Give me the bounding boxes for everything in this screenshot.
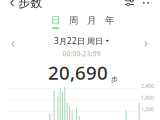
staticText: 月 (87, 15, 96, 26)
staticText: 周 (69, 15, 78, 26)
button[interactable]: Adjust goal (121, 0, 138, 8)
staticText: 1,800 (141, 94, 154, 101)
button[interactable]: 日 (46, 15, 64, 28)
staticText: 20,690 (48, 60, 108, 85)
staticText: 年 (105, 15, 114, 26)
button[interactable]: More (138, 0, 154, 8)
button[interactable]: Next day (139, 36, 153, 51)
staticText: 步数 (18, 0, 42, 10)
button[interactable]: Previous day (6, 36, 20, 51)
button[interactable]: 月 (82, 15, 100, 28)
staticText: 1,200 (141, 106, 154, 113)
button[interactable]: 周 (64, 15, 82, 28)
staticText: 00:00-23:59 (62, 49, 100, 58)
staticText: 3月22日 周日 (54, 36, 103, 46)
staticText: 步 (111, 75, 118, 83)
staticText: 2,400 (141, 82, 154, 90)
button[interactable]: 年 (100, 15, 118, 28)
button[interactable]: 步数 (0, 0, 42, 11)
staticText: 日 (51, 15, 60, 26)
button[interactable]: 3月22日 周日 (39, 36, 123, 58)
